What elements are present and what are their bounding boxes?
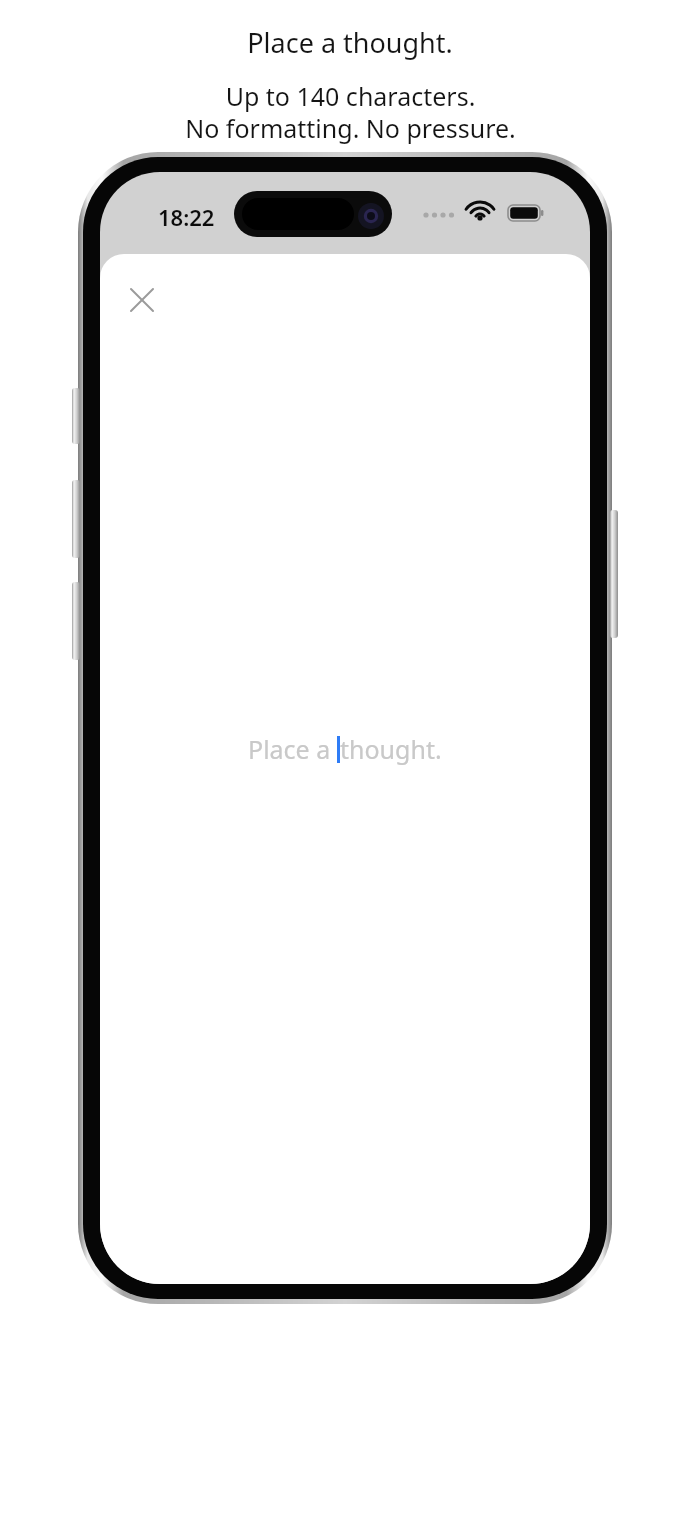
staticText: thought. — [340, 732, 442, 766]
button[interactable]: Place a — [248, 732, 442, 766]
staticText: Up to 140 characters. No formatting. No … — [185, 79, 516, 145]
staticText: 18:22 — [158, 202, 215, 232]
staticText: Place a thought. — [247, 24, 453, 61]
button[interactable]: Close — [114, 272, 170, 328]
staticText: Place a — [248, 732, 337, 766]
